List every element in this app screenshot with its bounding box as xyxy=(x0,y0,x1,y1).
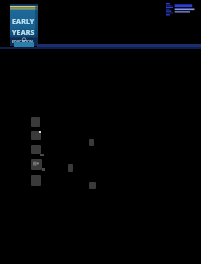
button[interactable]: Routledge Taylor and Francis Group xyxy=(166,3,198,16)
staticText: YEARS xyxy=(12,28,35,38)
staticText: EDUCATION xyxy=(12,39,33,44)
button[interactable]: Journal cover: Early Years Education xyxy=(10,4,38,46)
staticText: EARLY xyxy=(12,17,35,27)
